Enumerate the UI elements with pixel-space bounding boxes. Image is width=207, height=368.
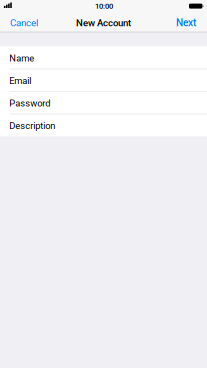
button[interactable]: Password xyxy=(0,91,207,114)
staticText: Password xyxy=(9,98,50,109)
staticText: Next xyxy=(176,17,196,29)
staticText: Description xyxy=(9,120,55,131)
button[interactable]: Description xyxy=(0,114,207,136)
staticText: Name xyxy=(9,53,34,64)
button[interactable]: Name xyxy=(0,46,207,69)
staticText: Cancel xyxy=(10,17,38,29)
button[interactable]: Next xyxy=(176,17,207,29)
button[interactable]: Cancel xyxy=(0,17,38,29)
staticText: New Account xyxy=(76,17,131,29)
staticText: 10:00 xyxy=(95,2,113,11)
button[interactable]: Email xyxy=(0,69,207,91)
staticText: Email xyxy=(9,75,31,86)
